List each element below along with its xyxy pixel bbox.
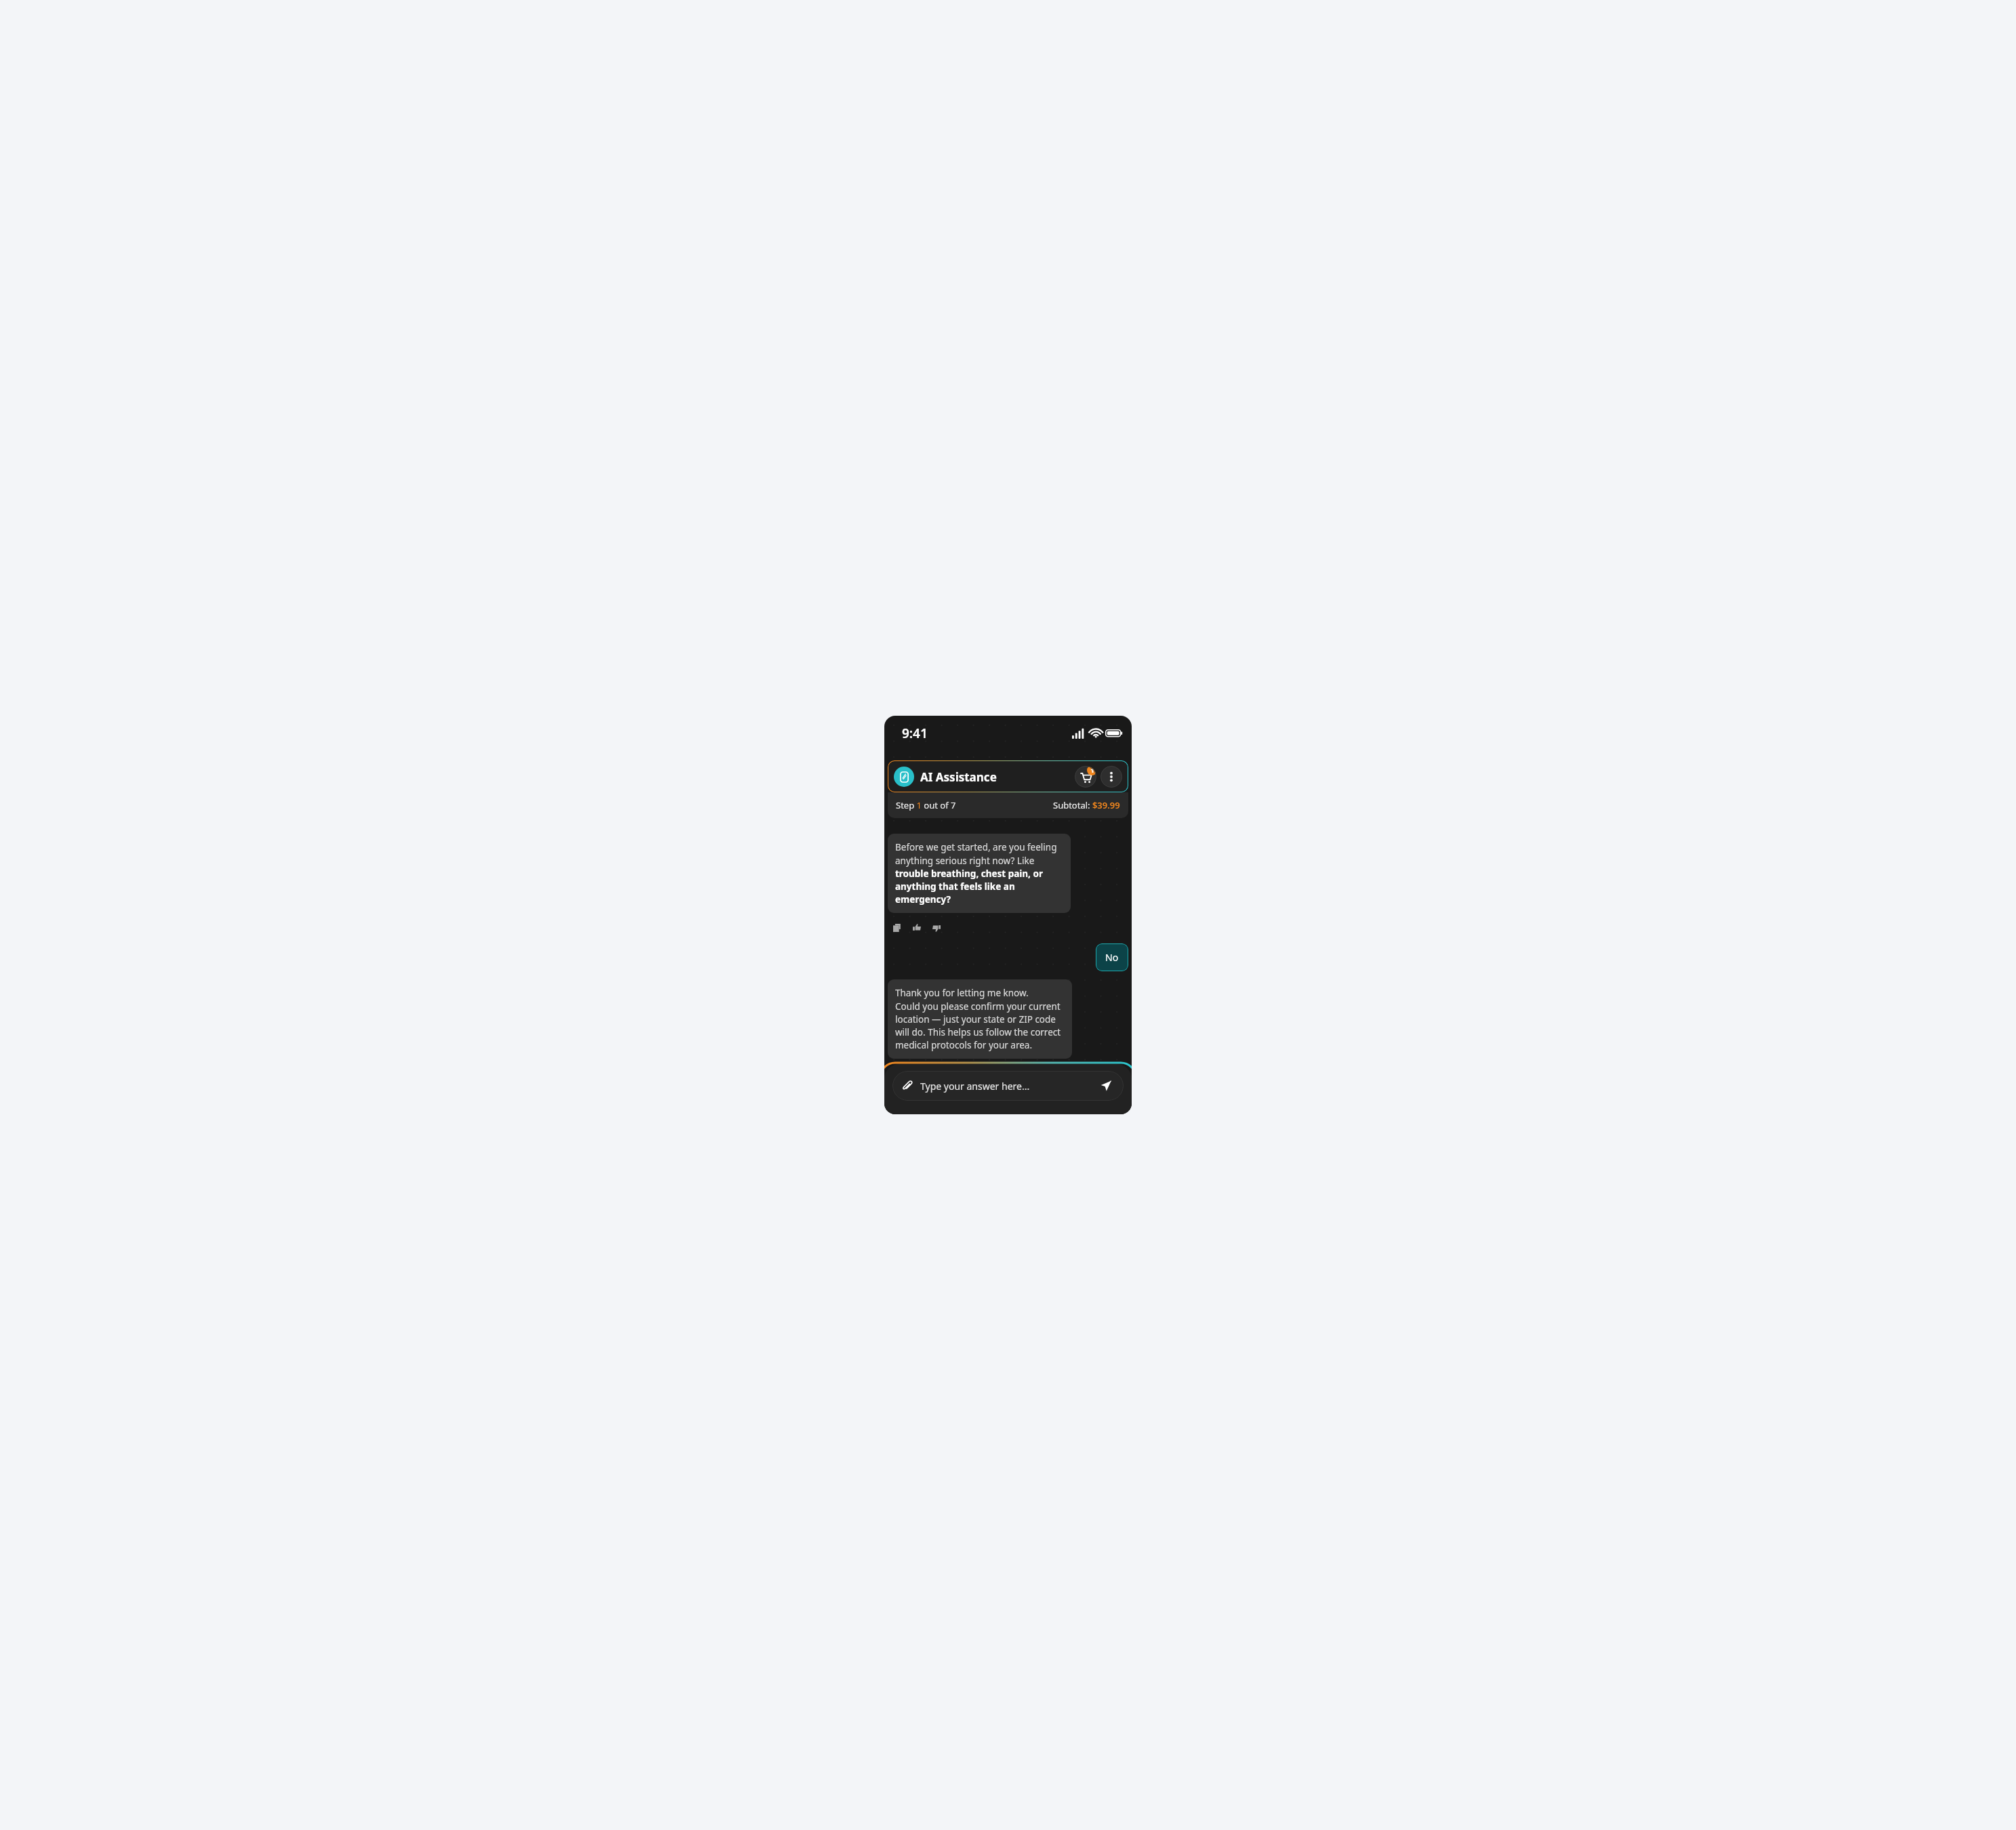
staticText: 1: [1090, 766, 1094, 775]
button[interactable]: Attach file: [892, 1071, 1124, 1101]
button[interactable]: Thumbs up: [909, 920, 924, 935]
button[interactable]: Copy: [890, 920, 905, 935]
staticText: No: [1105, 951, 1119, 964]
button[interactable]: No: [1096, 943, 1128, 971]
button[interactable]: Thumbs down: [929, 920, 944, 935]
button[interactable]: AI Assistance logo: [894, 767, 914, 787]
button[interactable]: Cart, 1 item: [1075, 766, 1096, 788]
staticText: Thank you for letting me know. Could you…: [895, 987, 1065, 1051]
button[interactable]: Send: [1098, 1078, 1114, 1094]
button[interactable]: Before we get started, are you feeling a…: [888, 834, 1071, 913]
staticText: Subtotal: $39.99: [1053, 799, 1120, 811]
button[interactable]: Thank you for letting me know. Could you…: [888, 979, 1072, 1059]
other: Attach file: [902, 1080, 913, 1091]
staticText: Step 1 out of 7: [896, 799, 956, 811]
staticText: 9:41: [902, 725, 928, 742]
staticText: AI Assistance: [920, 769, 997, 785]
staticText: Before we get started, are you feeling a…: [895, 841, 1063, 906]
staticText: Type your answer here...: [920, 1080, 1030, 1093]
button[interactable]: More options: [1100, 766, 1122, 788]
